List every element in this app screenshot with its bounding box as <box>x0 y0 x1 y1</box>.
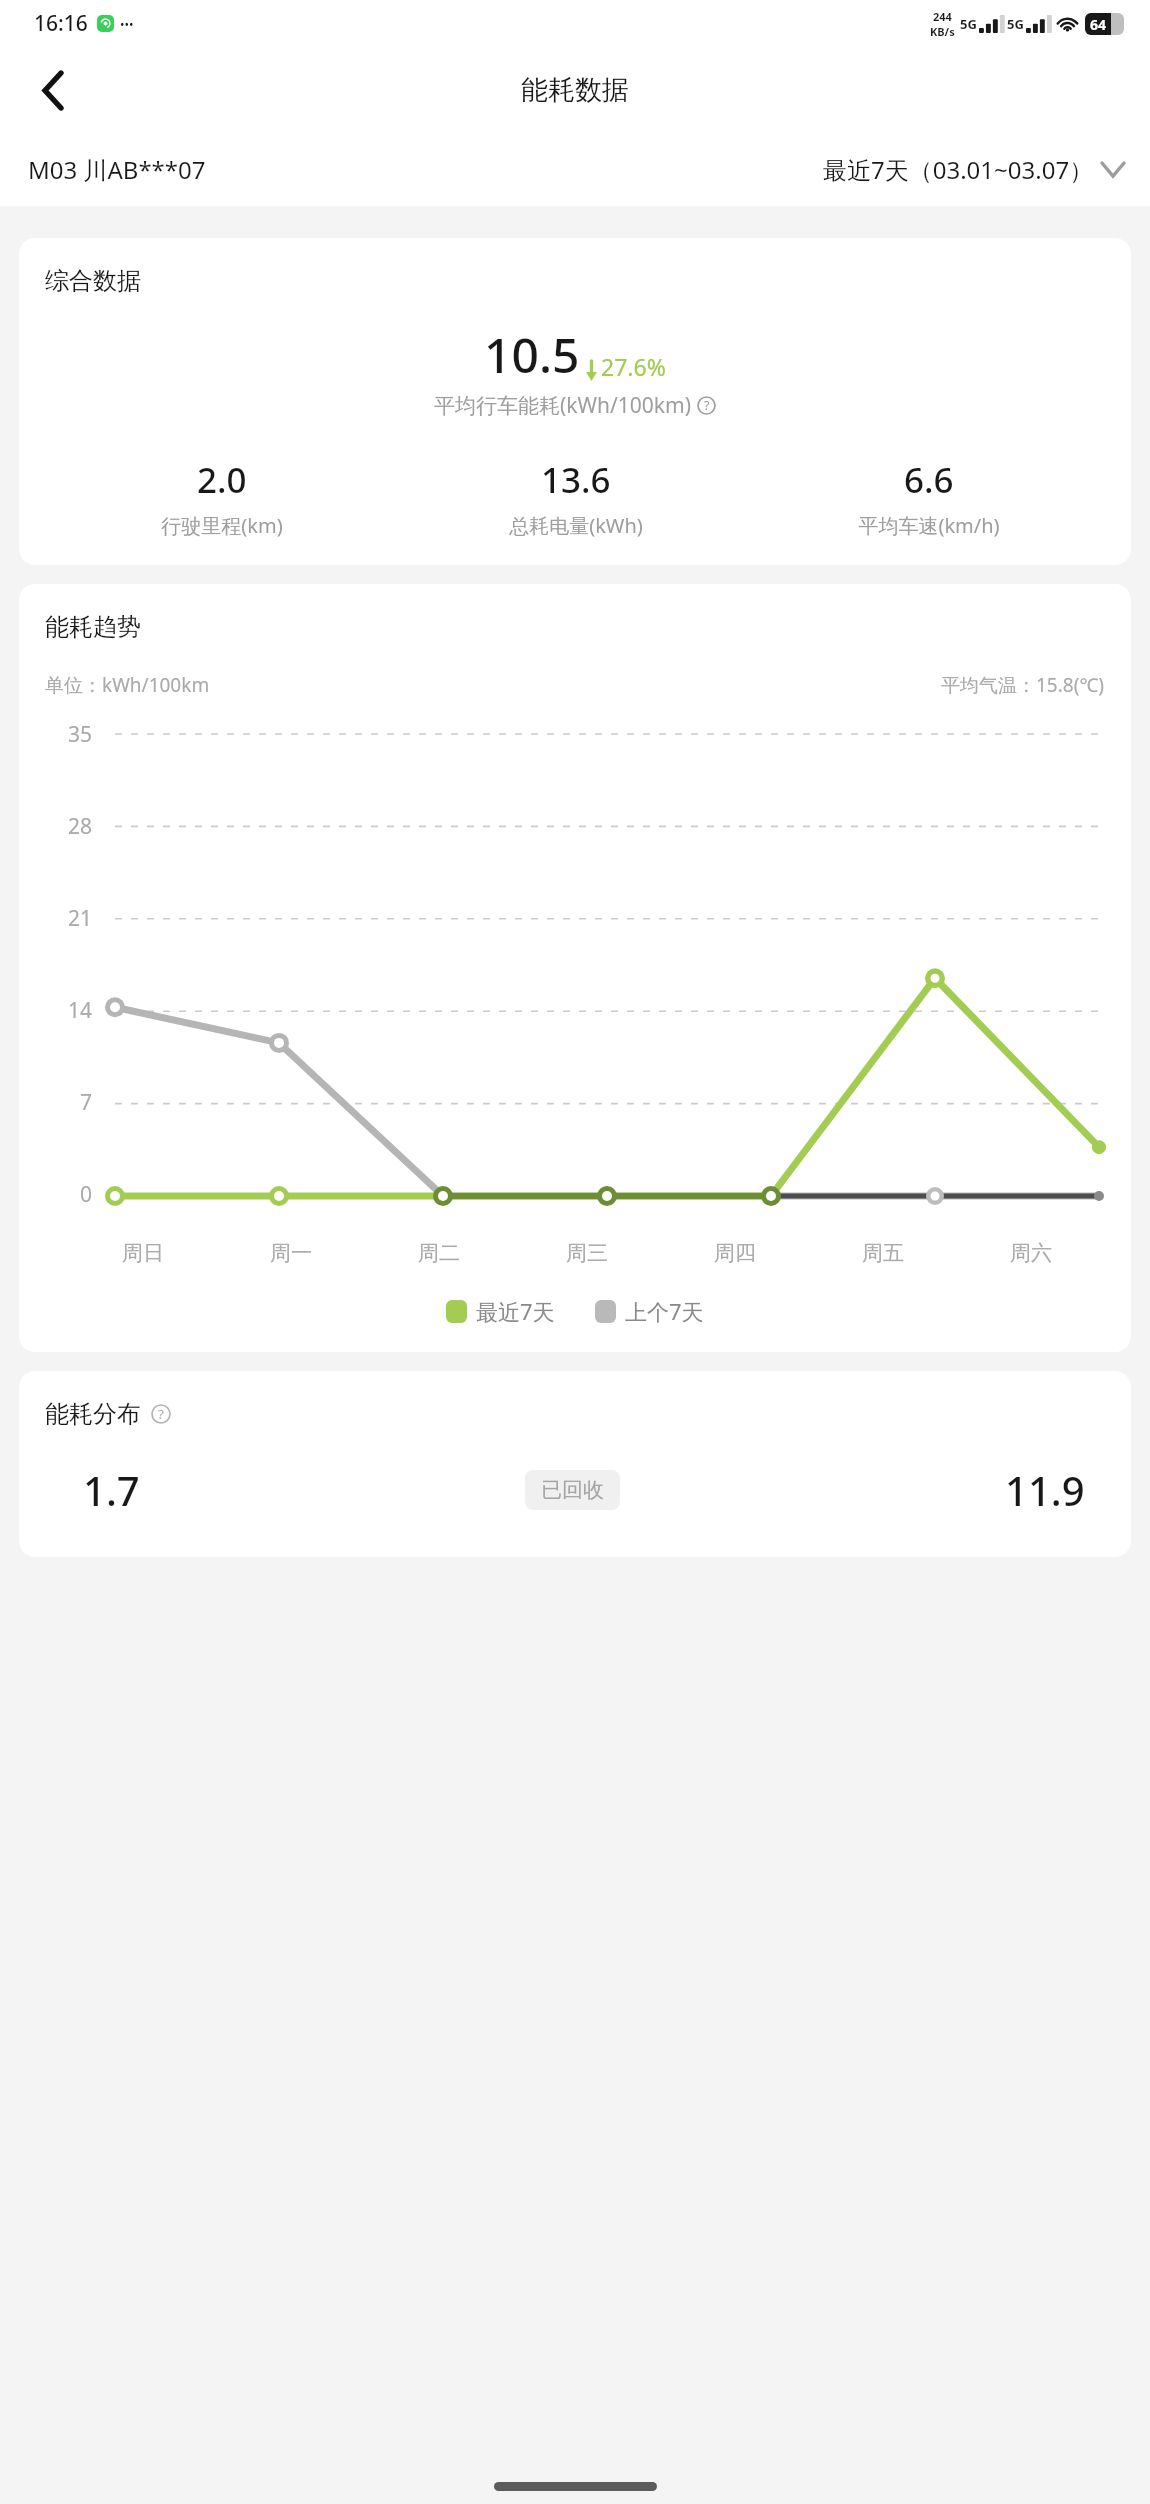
staticText: 35 <box>68 720 93 749</box>
staticText: 13.6 <box>541 456 611 504</box>
staticText: 周五 <box>862 1240 904 1266</box>
button[interactable]: Back <box>22 59 84 121</box>
button[interactable]: 最近7天（03.01~03.07） <box>823 153 1124 186</box>
staticText: 5G <box>960 15 977 33</box>
staticText: ? <box>704 397 710 414</box>
staticText: 27.6% <box>601 351 666 382</box>
staticText: 64 <box>1090 15 1107 34</box>
staticText: ? <box>158 1405 164 1423</box>
staticText: 周六 <box>1010 1240 1052 1266</box>
button[interactable]: 2.0 <box>45 456 399 539</box>
staticText: 7 <box>80 1088 93 1117</box>
staticText: 244 <box>933 9 952 24</box>
staticText: 能耗趋势 <box>45 612 141 642</box>
staticText: 最近7天 <box>476 1296 555 1326</box>
staticText: 平均车速(km/h) <box>858 512 1000 539</box>
button[interactable]: 能耗趋势 <box>19 584 1131 1352</box>
staticText: 单位：kWh/100km <box>45 672 210 698</box>
staticText: 最近7天（03.01~03.07） <box>823 153 1094 186</box>
button[interactable]: 综合数据 <box>19 238 1131 565</box>
button[interactable]: 最近7天 <box>446 1296 555 1326</box>
staticText: 周三 <box>566 1240 608 1266</box>
staticText: 10.5 <box>484 322 580 387</box>
button[interactable]: M03 川AB***07 <box>28 153 206 186</box>
staticText: 能耗分布 <box>45 1399 141 1429</box>
staticText: 2.0 <box>197 456 247 504</box>
staticText: 14 <box>68 996 93 1025</box>
staticText: 周四 <box>714 1240 756 1266</box>
staticText: KB/s <box>930 24 955 39</box>
staticText: 16:16 <box>34 9 88 38</box>
button[interactable]: 能耗分布 <box>19 1371 1131 1557</box>
staticText: 平均行车能耗(kWh/100km) <box>434 391 692 420</box>
staticText: 5G <box>1007 15 1024 33</box>
staticText: 1.7 <box>83 1463 140 1517</box>
staticText: 0 <box>80 1180 93 1208</box>
staticText: 6.6 <box>904 456 954 504</box>
staticText: 能耗数据 <box>521 73 629 107</box>
staticText: 平均气温：15.8(℃) <box>941 672 1105 698</box>
staticText: 周二 <box>418 1240 460 1266</box>
staticText: 总耗电量(kWh) <box>509 512 643 539</box>
staticText: 21 <box>68 904 93 933</box>
button[interactable]: 上个7天 <box>595 1296 704 1326</box>
staticText: 行驶里程(km) <box>161 512 283 539</box>
staticText: 11.9 <box>1005 1463 1085 1517</box>
staticText: ••• <box>120 16 134 32</box>
staticText: 已回收 <box>541 1477 604 1503</box>
staticText: 上个7天 <box>625 1296 704 1326</box>
staticText: 周一 <box>270 1240 312 1266</box>
staticText: 周日 <box>122 1240 164 1266</box>
button[interactable]: 6.6 <box>752 456 1105 539</box>
staticText: 综合数据 <box>45 266 141 296</box>
button[interactable]: 13.6 <box>399 456 752 539</box>
staticText: 28 <box>68 812 93 841</box>
